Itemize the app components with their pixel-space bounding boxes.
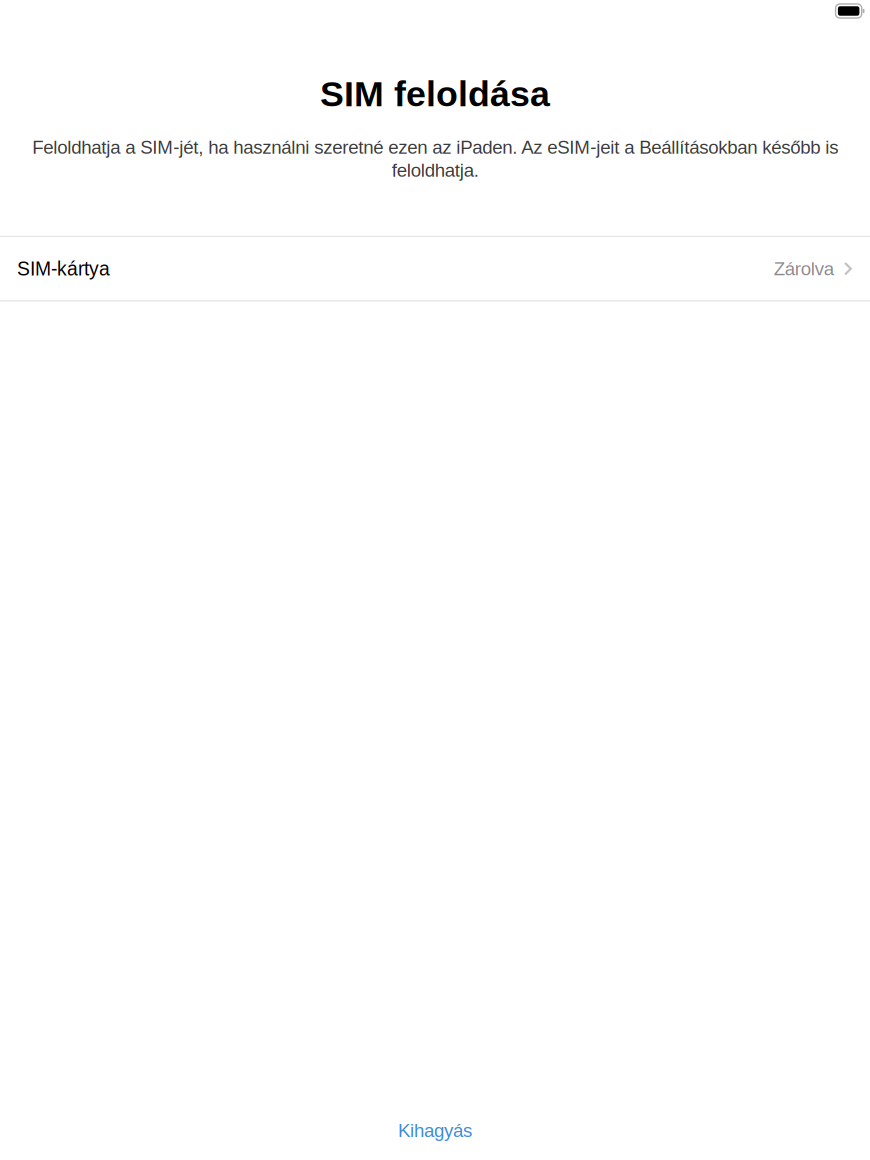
staticText: Kihagyás <box>398 1120 472 1141</box>
staticText: SIM-kártya <box>17 258 110 279</box>
button[interactable]: SIM-kártya <box>0 237 870 300</box>
staticText: SIM feloldása <box>320 74 550 114</box>
button[interactable]: Kihagyás <box>376 1110 494 1151</box>
staticText: Zárolva <box>774 258 834 279</box>
staticText: Feloldhatja a SIM-jét, ha használni szer… <box>32 136 838 182</box>
